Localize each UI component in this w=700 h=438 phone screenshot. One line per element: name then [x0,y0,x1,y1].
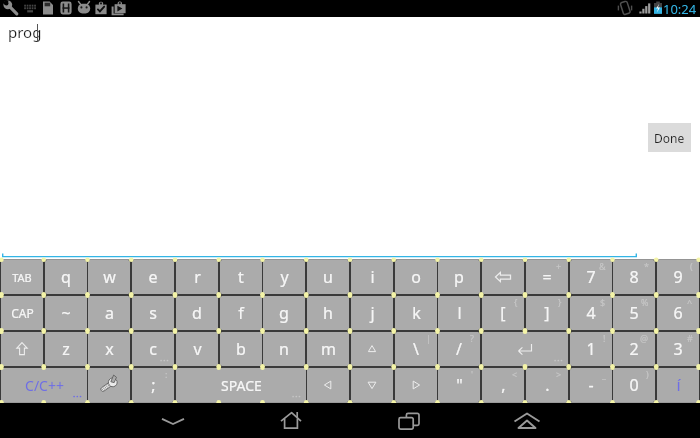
button[interactable]: f [220,296,262,330]
button[interactable]: / [438,332,480,366]
button[interactable]: c [132,332,174,366]
staticText: ; [151,374,156,396]
staticText: \ [413,338,419,360]
staticText: / [456,338,462,360]
button[interactable]: í [657,368,699,402]
button[interactable]: i [351,260,393,294]
staticText: f [238,302,244,324]
button[interactable]: \ [395,332,437,366]
button[interactable]: 2 [613,332,655,366]
button[interactable]: w [88,260,130,294]
staticText: 7 [586,266,596,288]
button[interactable]: shift [1,332,43,366]
staticText: l [457,302,462,324]
button[interactable]: s [132,296,174,330]
button[interactable]: m [307,332,349,366]
button[interactable]: b [220,332,262,366]
button[interactable]: 1 [570,332,612,366]
button[interactable]: 0 [613,368,655,402]
button[interactable]: g [263,296,305,330]
other: bksp [482,260,524,294]
button[interactable]: C/C++ [1,368,87,402]
button[interactable]: q [45,260,87,294]
button[interactable]: - [570,368,612,402]
other: enter [482,332,568,366]
button[interactable]: 9 [657,260,699,294]
staticText: c [149,338,157,360]
button[interactable]: Hide keyboard [133,403,213,438]
button[interactable]: h [307,296,349,330]
staticText: . [545,374,550,396]
button[interactable]: o [395,260,437,294]
button[interactable]: 4 [570,296,612,330]
staticText: g [279,302,289,324]
button[interactable]: y [263,260,305,294]
button[interactable]: a [88,296,130,330]
button[interactable]: d [176,296,218,330]
button[interactable]: , [482,368,524,402]
button[interactable]: x [88,332,130,366]
button[interactable]: 5 [613,296,655,330]
staticText: @ [640,332,649,344]
staticText: 2 [629,338,639,360]
button[interactable]: v [176,332,218,366]
button[interactable]: CAP [1,296,43,330]
button[interactable]: " [438,368,480,402]
staticText: prog [8,22,42,42]
button[interactable]: 7 [570,260,612,294]
button[interactable]: l [438,296,480,330]
staticText: = [542,266,552,288]
button[interactable]: [ [482,296,524,330]
button[interactable]: bksp [482,260,524,294]
button[interactable]: left [307,368,349,402]
button[interactable]: = [526,260,568,294]
staticText: q [61,266,71,288]
button[interactable]: down [351,368,393,402]
button[interactable]: SPACE [176,368,306,402]
button[interactable]: r [176,260,218,294]
staticText: y [280,266,289,288]
staticText: ' [471,368,474,380]
button[interactable]: n [263,332,305,366]
staticText: 1 [586,338,596,360]
button[interactable]: Menu [487,403,567,438]
button[interactable]: j [351,296,393,330]
button[interactable]: up [351,332,393,366]
button[interactable]: right [395,368,437,402]
staticText: " [456,374,463,396]
button[interactable]: Done [648,123,691,152]
staticText: 8 [629,266,639,288]
staticText: - [588,374,594,396]
button[interactable]: ~ [45,296,87,330]
button[interactable]: z [45,332,87,366]
button[interactable]: Home [251,403,331,438]
button[interactable]: Recent apps [369,403,449,438]
button[interactable]: wrench [88,368,130,402]
button[interactable]: 6 [657,296,699,330]
button[interactable]: u [307,260,349,294]
staticText: ] [544,302,550,324]
staticText: ~ [61,302,71,324]
staticText: , [501,374,506,396]
button[interactable]: t [220,260,262,294]
button[interactable]: p [438,260,480,294]
staticText: 9 [673,266,683,288]
staticText: : [165,368,168,380]
staticText: j [370,302,375,324]
staticText: ) [646,368,649,380]
button[interactable]: TAB [1,260,43,294]
button[interactable]: ] [526,296,568,330]
staticText: 6 [673,302,683,324]
other: down [351,368,393,402]
button[interactable]: . [526,368,568,402]
button[interactable]: enter [482,332,568,366]
staticText: < [512,368,518,380]
button[interactable]: ; [132,368,174,402]
button[interactable]: k [395,296,437,330]
button[interactable]: e [132,260,174,294]
staticText: _ [602,368,606,380]
staticText: e [148,266,158,288]
other: shift [1,332,43,366]
button[interactable]: 3 [657,332,699,366]
button[interactable]: 8 [613,260,655,294]
